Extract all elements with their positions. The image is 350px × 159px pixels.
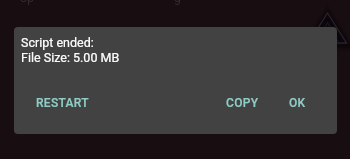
staticText: RESTART [36, 96, 89, 110]
staticText: Script ended: [21, 35, 94, 50]
button[interactable]: RESTART [28, 91, 97, 115]
staticText: COPY [226, 96, 259, 110]
button[interactable]: COPY [218, 91, 267, 115]
button[interactable]: OK [281, 91, 314, 115]
staticText: Sp [20, 0, 34, 5]
staticText: File Size: 5.00 MB [21, 50, 120, 65]
staticText: g [174, 0, 181, 5]
staticText: OK [289, 96, 306, 110]
